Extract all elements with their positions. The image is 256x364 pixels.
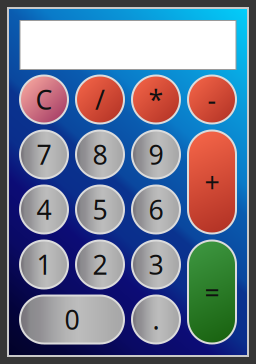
button[interactable]: 5 (76, 185, 124, 233)
staticText: . (152, 302, 159, 337)
button[interactable]: 1 (20, 240, 68, 288)
button[interactable]: 7 (20, 130, 68, 178)
button[interactable]: + (188, 130, 236, 233)
staticText: / (95, 82, 105, 117)
button[interactable]: 2 (76, 240, 124, 288)
staticText: 1 (36, 247, 51, 282)
staticText: * (148, 82, 163, 117)
staticText: 3 (148, 247, 163, 282)
button[interactable]: * (132, 75, 180, 123)
staticText: = (204, 274, 219, 310)
staticText: 0 (64, 302, 79, 337)
staticText: 2 (92, 247, 107, 282)
staticText: 8 (92, 137, 107, 172)
button[interactable]: . (132, 295, 180, 343)
button[interactable]: = (188, 240, 236, 343)
button[interactable]: / (76, 75, 124, 123)
button[interactable]: 4 (20, 185, 68, 233)
button[interactable]: C (20, 75, 68, 123)
button[interactable]: 3 (132, 240, 180, 288)
staticText: 5 (92, 192, 107, 227)
staticText: - (207, 82, 216, 117)
staticText: 6 (148, 192, 163, 227)
button[interactable]: 9 (132, 130, 180, 178)
button[interactable]: 0 (20, 295, 124, 343)
button[interactable]: 6 (132, 185, 180, 233)
staticText: 7 (36, 137, 51, 172)
staticText: 4 (36, 192, 51, 227)
staticText: + (204, 164, 219, 200)
staticText: 9 (148, 137, 163, 172)
staticText: C (35, 82, 52, 117)
button[interactable]: 8 (76, 130, 124, 178)
button[interactable]: - (188, 75, 236, 123)
